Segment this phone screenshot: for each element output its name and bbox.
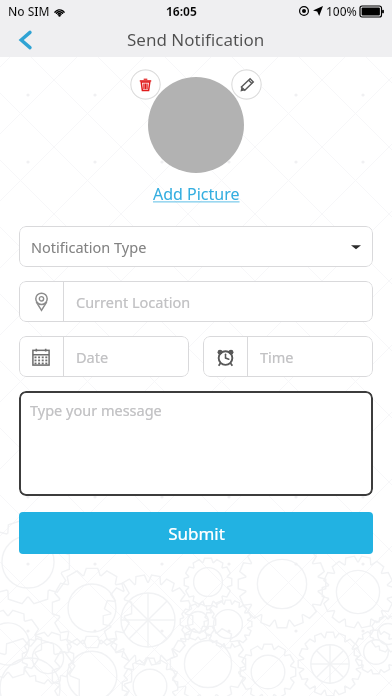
button[interactable]: Time — [203, 336, 373, 377]
staticText: Notification Type — [31, 237, 147, 257]
button[interactable]: Back — [6, 22, 46, 57]
button[interactable]: Notification Type — [19, 226, 373, 267]
staticText: 16:05 — [166, 3, 197, 19]
button[interactable]: Date — [19, 336, 189, 377]
button[interactable]: Add Picture — [147, 181, 246, 207]
button[interactable]: Location — [19, 281, 373, 322]
staticText: 100% — [326, 3, 357, 19]
staticText: Type your message — [30, 400, 162, 420]
staticText: Current Location — [76, 292, 191, 312]
staticText: No SIM — [8, 3, 50, 19]
button[interactable]: Delete picture — [130, 69, 161, 100]
staticText: Time — [260, 347, 294, 367]
button[interactable]: Edit picture — [231, 69, 262, 100]
staticText: Add Picture — [153, 183, 240, 205]
button[interactable]: Submit — [19, 512, 373, 554]
button[interactable]: Profile picture — [148, 77, 244, 173]
staticText: Submit — [168, 522, 225, 545]
staticText: Send Notification — [127, 28, 265, 51]
staticText: Date — [76, 347, 109, 367]
button[interactable]: Type your message — [19, 391, 373, 496]
